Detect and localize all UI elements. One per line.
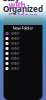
staticText: Folder — [10, 37, 19, 40]
button[interactable]: Folder — [3, 61, 42, 66]
staticText: Folder — [10, 67, 19, 70]
staticText: Folder — [10, 42, 19, 45]
button[interactable]: Folder — [3, 46, 42, 51]
staticText: Folder — [10, 52, 19, 55]
staticText: Stay Organized — [3, 0, 43, 14]
button[interactable]: Folder — [3, 66, 42, 71]
staticText: New Folder — [12, 25, 33, 31]
staticText: Folder — [10, 57, 19, 60]
button[interactable]: Folder — [3, 36, 42, 41]
staticText: Folder — [10, 32, 19, 35]
staticText: with Folders — [8, 0, 37, 21]
staticText: Folder — [10, 47, 19, 50]
button[interactable]: Folder — [3, 41, 42, 46]
button[interactable]: Folder — [3, 51, 42, 56]
button[interactable]: Folder — [3, 31, 42, 36]
staticText: Folder — [10, 62, 19, 65]
button[interactable]: Folder — [3, 56, 42, 61]
